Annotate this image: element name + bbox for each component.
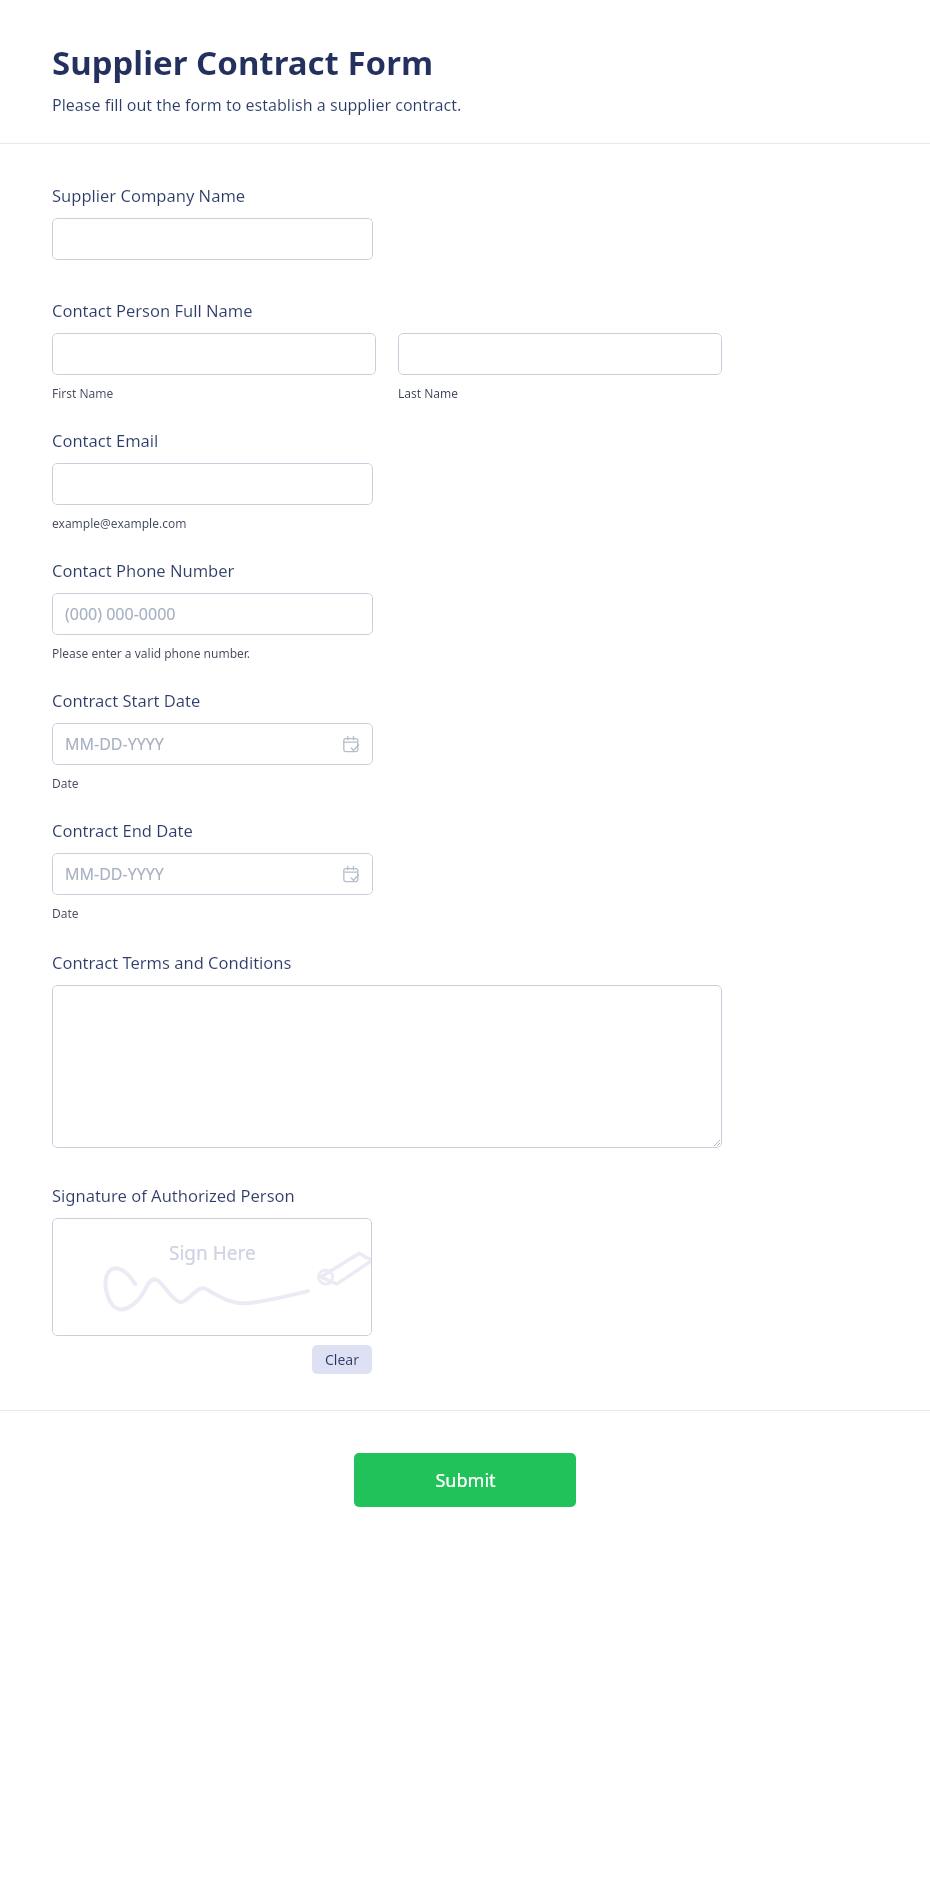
- other: Open calendar: [342, 865, 360, 883]
- staticText: (000) 000-0000: [65, 603, 176, 625]
- button[interactable]: Clear: [312, 1345, 372, 1374]
- staticText: Date: [52, 905, 79, 921]
- staticText: Contract End Date: [52, 819, 193, 841]
- staticText: Please fill out the form to establish a …: [52, 94, 462, 116]
- button[interactable]: MM-DD-YYYY: [52, 723, 373, 765]
- staticText: Signature of Authorized Person: [52, 1184, 295, 1206]
- staticText: Contact Person Full Name: [52, 299, 253, 321]
- staticText: Submit: [435, 1468, 496, 1493]
- staticText: MM-DD-YYYY: [65, 733, 164, 755]
- button[interactable]: Signature pad: [52, 1218, 372, 1336]
- staticText: Clear: [325, 1350, 359, 1369]
- button[interactable]: Submit: [354, 1453, 576, 1507]
- button[interactable]: [52, 218, 373, 260]
- button[interactable]: MM-DD-YYYY: [52, 853, 373, 895]
- staticText: Contract Terms and Conditions: [52, 951, 292, 973]
- staticText: Supplier Company Name: [52, 184, 246, 206]
- staticText: Supplier Contract Form: [52, 40, 434, 85]
- staticText: Contract Start Date: [52, 689, 201, 711]
- staticText: First Name: [52, 385, 114, 401]
- staticText: example@example.com: [52, 515, 187, 531]
- other: Open calendar: [342, 735, 360, 753]
- staticText: Contact Email: [52, 429, 159, 451]
- button[interactable]: [52, 463, 373, 505]
- button[interactable]: (000) 000-0000: [52, 593, 373, 635]
- button[interactable]: [52, 333, 376, 375]
- staticText: Contact Phone Number: [52, 559, 235, 581]
- staticText: Please enter a valid phone number.: [52, 645, 251, 661]
- staticText: Date: [52, 775, 79, 791]
- button[interactable]: Contract terms text area: [52, 985, 722, 1148]
- button[interactable]: [398, 333, 722, 375]
- staticText: Sign Here: [169, 1240, 256, 1266]
- staticText: MM-DD-YYYY: [65, 863, 164, 885]
- staticText: Last Name: [398, 385, 459, 401]
